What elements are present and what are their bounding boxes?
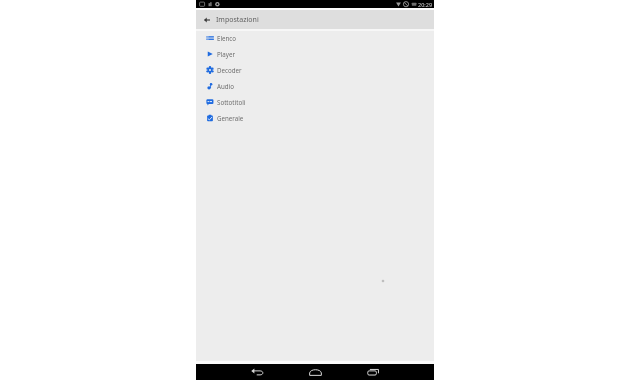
button[interactable]: Player [196,46,434,62]
staticText: Player [217,50,236,58]
button[interactable]: Generale [196,110,434,126]
staticText: Generale [217,114,244,122]
button[interactable]: Decoder [196,62,434,78]
staticText: Sottotitoli [217,98,246,106]
button[interactable]: Sottotitoli [196,94,434,110]
staticText: Elenco [217,34,237,42]
staticText: Impostazioni [216,15,259,25]
staticText: Decoder [217,66,242,74]
button[interactable]: Elenco [196,30,434,46]
staticText: 20:29 [418,1,433,8]
button[interactable]: Home [299,364,331,380]
button[interactable]: Recents [357,364,389,380]
button[interactable]: Back [241,364,273,380]
staticText: Audio [217,82,234,90]
button[interactable]: Audio [196,78,434,94]
button[interactable]: Back [197,10,217,29]
